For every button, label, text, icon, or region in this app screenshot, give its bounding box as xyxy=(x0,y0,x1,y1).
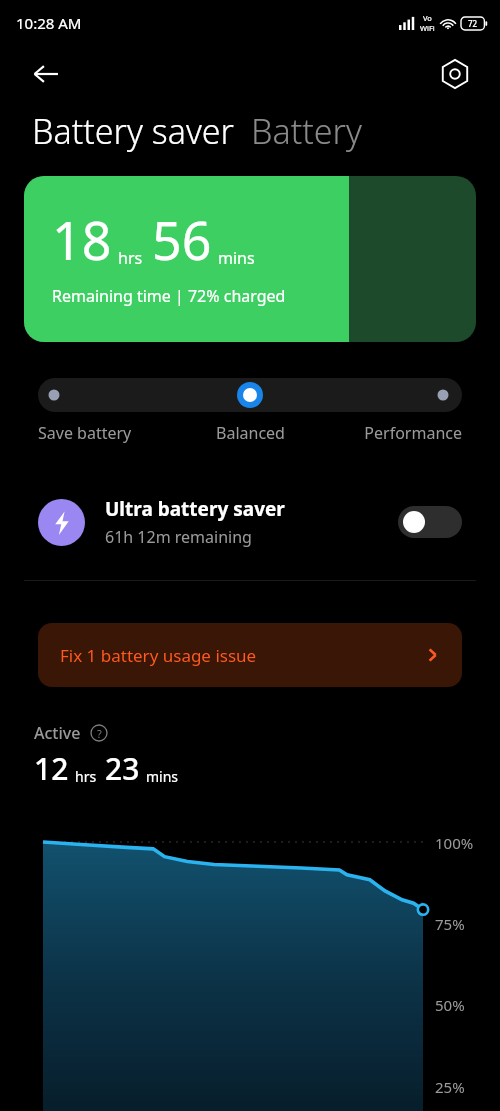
staticText: hrs xyxy=(75,767,97,786)
staticText: hrs xyxy=(118,247,143,269)
staticText: ? xyxy=(97,726,102,741)
staticText: WiFi xyxy=(420,23,435,33)
staticText: mins xyxy=(146,767,179,786)
staticText: Performance xyxy=(321,422,462,444)
staticText: mins xyxy=(218,247,255,269)
staticText: 25% xyxy=(435,1077,465,1097)
button[interactable]: Battery xyxy=(251,108,362,154)
button[interactable]: Ultra battery saver xyxy=(0,496,500,548)
staticText: 12 xyxy=(34,748,69,789)
staticText: Save battery xyxy=(38,422,180,444)
staticText: Fix 1 battery usage issue xyxy=(60,644,424,667)
staticText: 72 xyxy=(468,18,478,29)
staticText: Balanced xyxy=(180,422,321,444)
staticText: 56 xyxy=(152,204,212,275)
button[interactable]: Settings xyxy=(433,52,477,96)
staticText: 100% xyxy=(435,833,474,853)
button[interactable]: Back xyxy=(22,50,70,98)
button[interactable] xyxy=(38,378,462,412)
staticText: Active xyxy=(34,722,81,744)
staticText: 61h 12m remaining xyxy=(105,526,252,548)
staticText: Battery saver xyxy=(32,108,234,154)
button[interactable]: Battery saver xyxy=(32,108,234,154)
staticText: Remaining time | 72% charged xyxy=(52,285,286,307)
button[interactable]: Help xyxy=(89,723,109,743)
staticText: 50% xyxy=(435,995,465,1015)
staticText: Vo xyxy=(423,13,432,23)
button[interactable]: Fix 1 battery usage issue xyxy=(38,623,462,687)
button[interactable]: Ultra battery saver toggle xyxy=(398,506,462,538)
button[interactable]: 18 xyxy=(24,176,476,342)
staticText: 18 xyxy=(52,204,112,275)
staticText: 23 xyxy=(105,748,140,789)
staticText: 10:28 AM xyxy=(16,13,82,33)
staticText: Ultra battery saver xyxy=(105,496,285,522)
staticText: 75% xyxy=(435,914,465,934)
staticText: Battery xyxy=(251,108,362,154)
